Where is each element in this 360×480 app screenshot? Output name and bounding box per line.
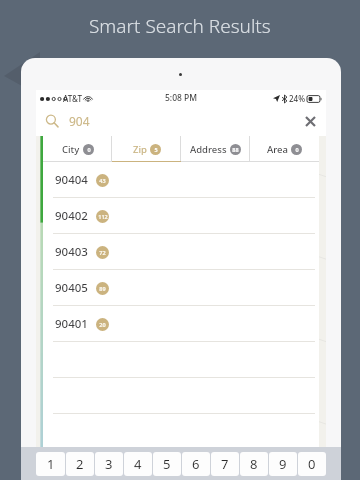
staticText: 7 (221, 455, 229, 473)
staticText: 72 (99, 249, 106, 256)
staticText: 20 (99, 321, 106, 328)
staticText: Smart Search Results (89, 13, 271, 39)
button[interactable]: Area (250, 136, 319, 162)
staticText: 1 (47, 455, 55, 473)
staticText: 90401 (55, 316, 88, 332)
staticText: 9 (279, 455, 287, 473)
staticText: 90405 (55, 280, 88, 296)
staticText: 0 (308, 455, 316, 473)
staticText: 88 (232, 146, 239, 153)
button[interactable]: 0 (298, 452, 326, 476)
staticText: City (62, 143, 80, 156)
staticText: 43 (99, 177, 106, 184)
button[interactable]: 90404 (43, 162, 319, 198)
staticText: 0 (87, 146, 91, 153)
staticText: Address (190, 143, 227, 156)
staticText: 904 (69, 113, 90, 129)
button[interactable]: Address (181, 136, 250, 162)
staticText: 4 (134, 455, 142, 473)
button[interactable]: 90403 (43, 234, 319, 270)
staticText: 0 (295, 146, 299, 153)
button[interactable]: 90402 (43, 198, 319, 234)
staticText: Zip (133, 143, 147, 156)
button[interactable]: 7 (211, 452, 239, 476)
button[interactable]: City (43, 136, 112, 162)
staticText: 6 (192, 455, 200, 473)
staticText: Area (267, 143, 288, 156)
button[interactable]: 5 (153, 452, 181, 476)
staticText: 90403 (55, 244, 88, 260)
staticText: 8 (250, 455, 258, 473)
button[interactable]: 6 (182, 452, 210, 476)
staticText: 5 (154, 146, 158, 153)
button[interactable]: 2 (66, 452, 94, 476)
staticText: 5:08 PM (165, 92, 198, 104)
staticText: 112 (98, 213, 108, 220)
button[interactable]: Clear search (299, 110, 321, 132)
button[interactable]: Zip (112, 136, 181, 162)
button[interactable]: 90405 (43, 270, 319, 306)
button[interactable]: 9 (269, 452, 297, 476)
staticText: 90404 (55, 172, 88, 188)
button[interactable]: 8 (240, 452, 268, 476)
button[interactable]: 90401 (43, 306, 319, 342)
button[interactable]: 1 (36, 452, 65, 476)
other: Search (45, 114, 59, 128)
staticText: 90402 (55, 208, 88, 224)
staticText: 2 (76, 455, 84, 473)
staticText: 5 (163, 455, 171, 473)
staticText: AT&T (63, 93, 82, 104)
staticText: 89 (99, 285, 106, 292)
staticText: 3 (105, 455, 113, 473)
button[interactable]: 4 (124, 452, 152, 476)
button[interactable]: 3 (95, 452, 123, 476)
staticText: 24% (289, 93, 305, 104)
